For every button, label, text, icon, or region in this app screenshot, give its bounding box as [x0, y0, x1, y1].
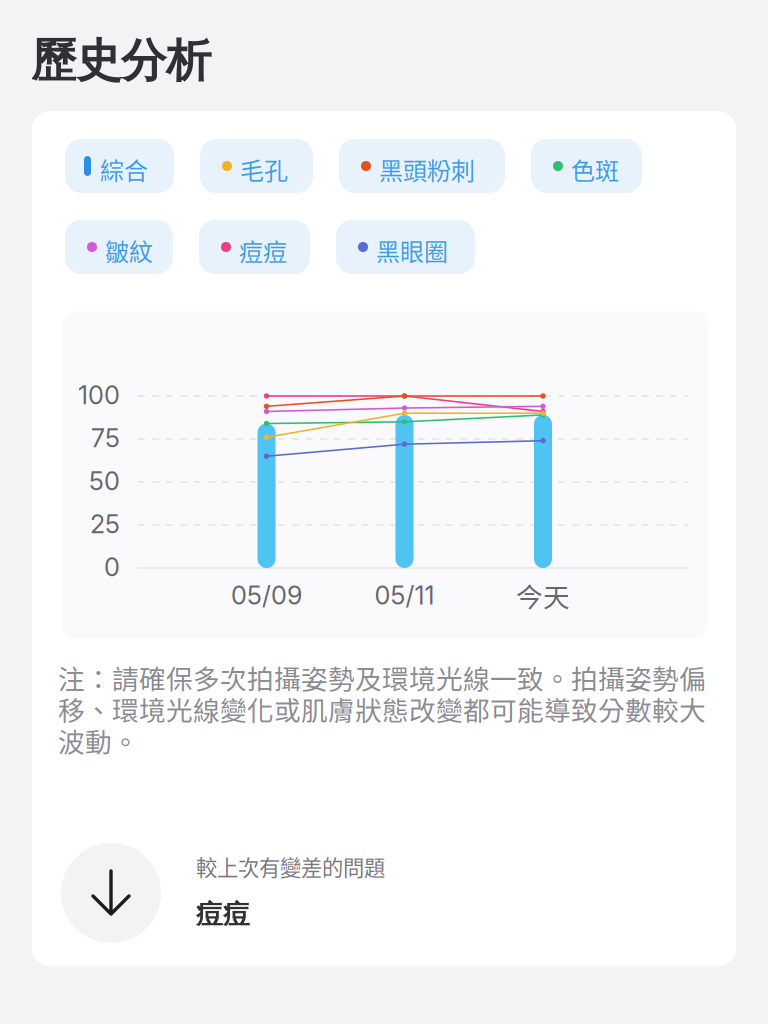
staticText: 皺紋 — [105, 233, 153, 268]
staticText: 今天 — [516, 576, 570, 615]
button[interactable]: 痘痘 — [199, 220, 310, 274]
staticText: 較上次有變差的問題 — [196, 851, 385, 882]
staticText: 黑頭粉刺 — [379, 152, 475, 187]
staticText: 歷史分析 — [31, 33, 211, 89]
staticText: 100 — [78, 380, 120, 410]
staticText: 綜合 — [100, 152, 148, 187]
button[interactable]: 黑眼圈 — [336, 220, 475, 274]
staticText: 05/11 — [374, 580, 434, 611]
button[interactable]: 毛孔 — [200, 139, 313, 193]
staticText: 注：請確保多次拍攝姿勢及環境光線一致。拍攝姿勢偏移、環境光線變化或肌膚狀態改變都… — [58, 658, 706, 760]
staticText: 75 — [91, 423, 120, 453]
staticText: 25 — [90, 509, 120, 539]
staticText: 0 — [104, 552, 120, 582]
button[interactable]: 皺紋 — [65, 220, 173, 274]
staticText: 50 — [89, 466, 120, 496]
button[interactable]: 黑頭粉刺 — [339, 139, 505, 193]
staticText: 05/09 — [231, 580, 302, 611]
button[interactable]: 色斑 — [531, 139, 642, 193]
staticText: 色斑 — [571, 152, 619, 187]
button[interactable]: 綜合 — [65, 139, 174, 193]
staticText: 痘痘 — [196, 898, 250, 931]
staticText: 毛孔 — [240, 152, 288, 187]
staticText: 痘痘 — [239, 233, 287, 268]
staticText: 黑眼圈 — [376, 233, 448, 268]
